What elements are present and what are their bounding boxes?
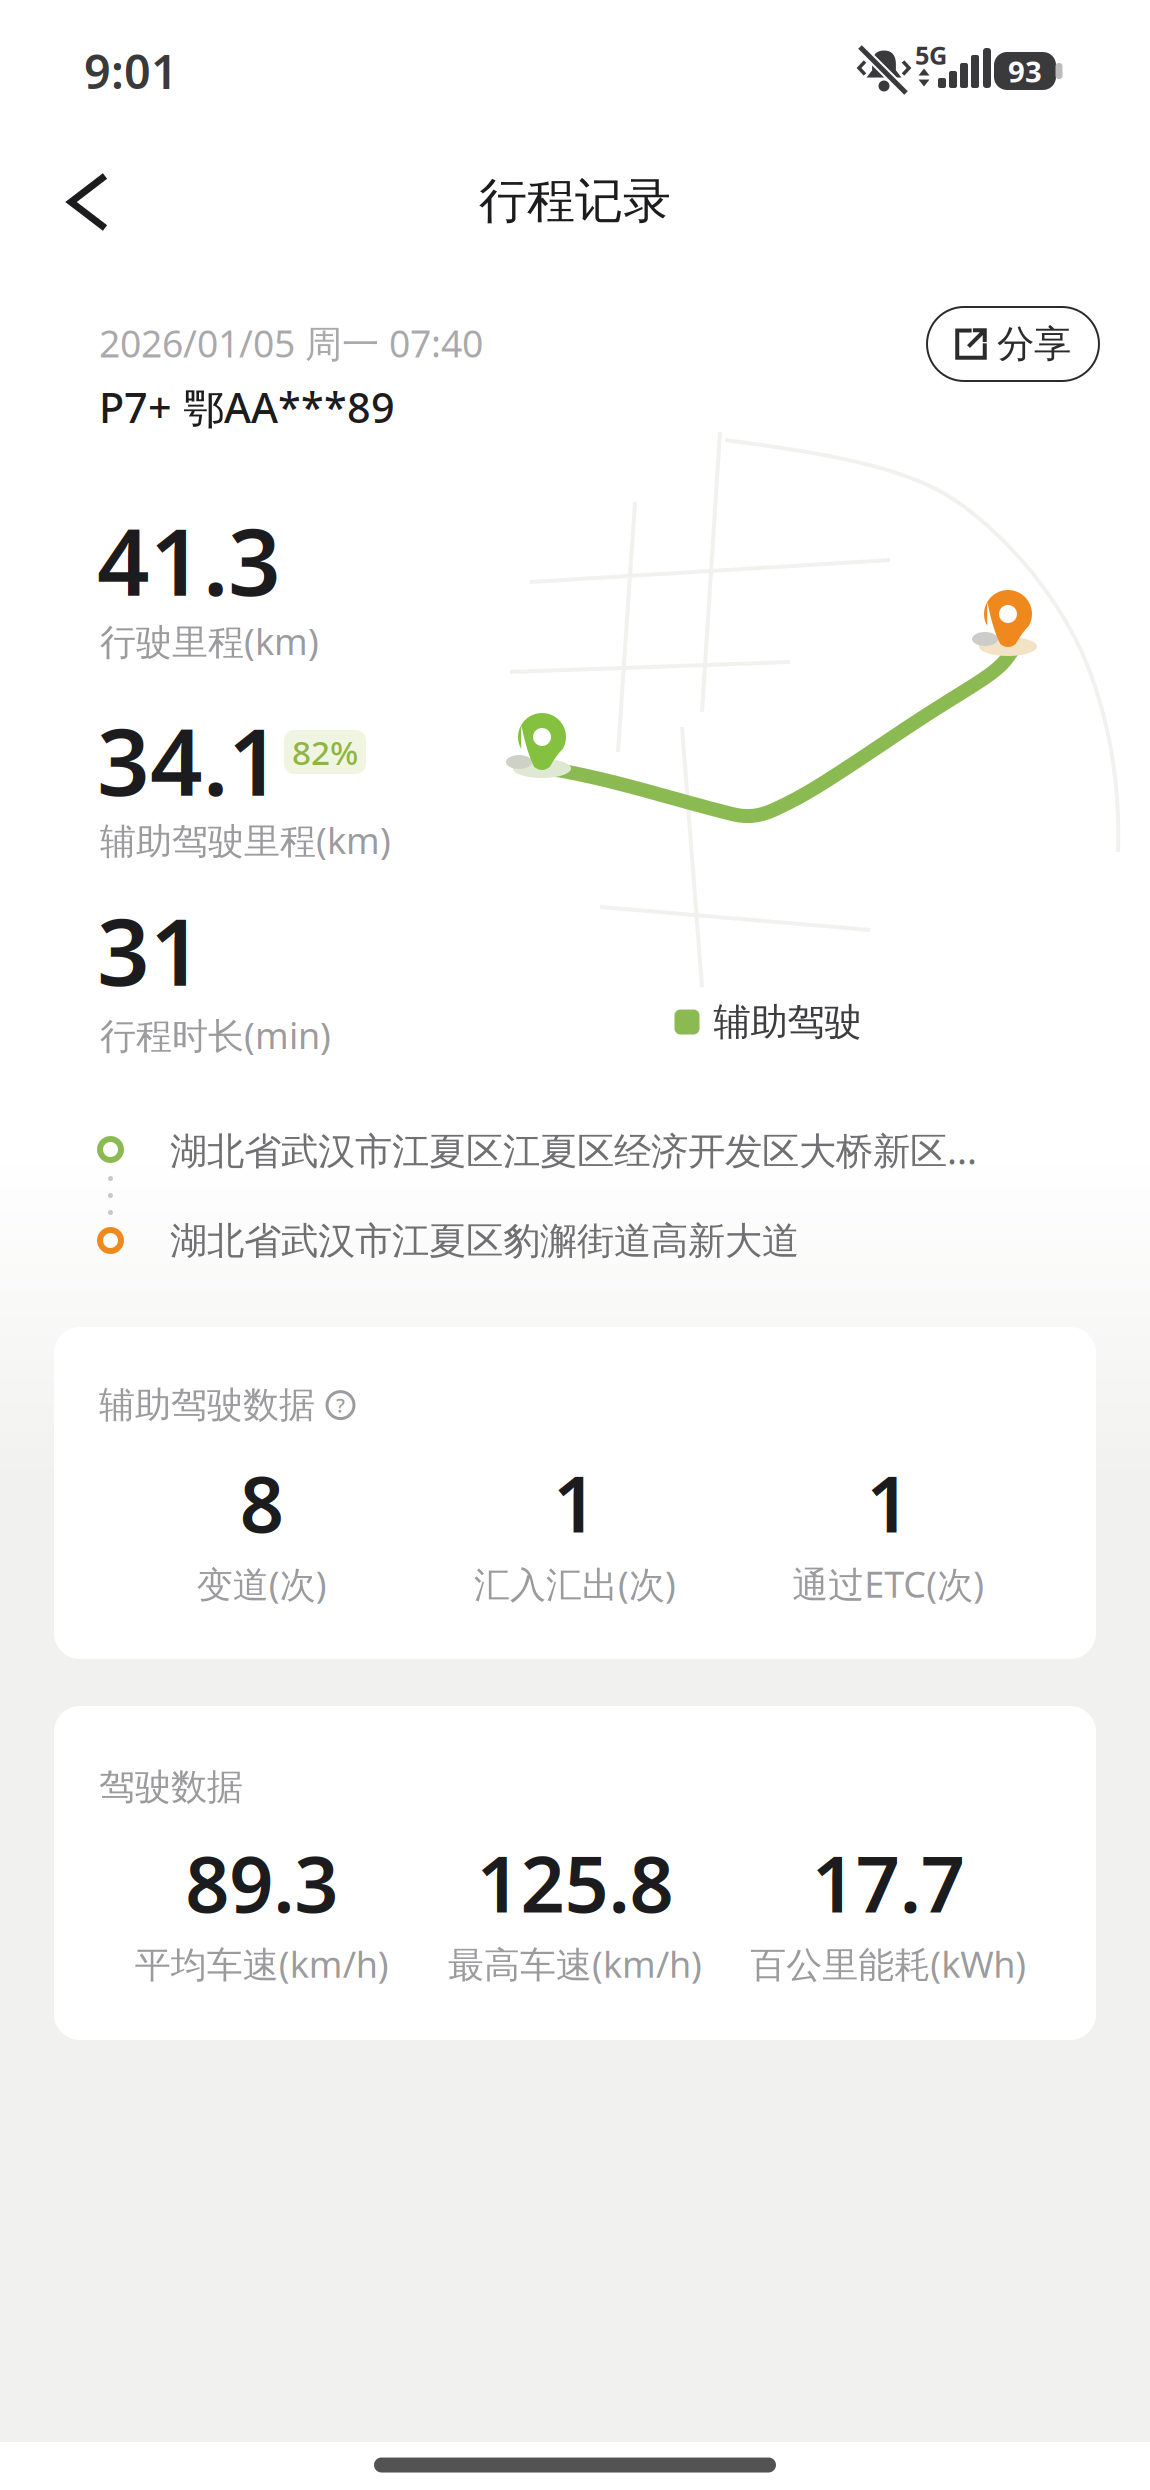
staticText: 93 [1008,51,1042,90]
staticText: 1 [553,1451,597,1554]
staticText: 34.1 [97,699,281,821]
staticText: 行程记录 [479,171,671,230]
staticText: 41.3 [97,499,281,621]
staticText: ? [336,1392,345,1418]
button[interactable]: 分享 [927,307,1099,381]
staticText: 变道(次) [197,1560,327,1608]
staticText: 汇入汇出(次) [474,1560,676,1608]
staticText: 行驶里程(km) [100,617,319,665]
staticText: 辅助驾驶里程(km) [100,816,391,864]
staticText: 31 [97,889,203,1011]
staticText: 分享 [997,321,1071,367]
staticText: 125.8 [476,1831,673,1934]
staticText: 8 [240,1451,284,1554]
staticText: 2026/01/05 周一 07:40 [99,318,483,368]
staticText: 1 [866,1451,910,1554]
staticText: 平均车速(km/h) [135,1940,389,1988]
staticText: 驾驶数据 [99,1765,243,1809]
staticText: 9:01 [84,40,178,102]
staticText: 湖北省武汉市江夏区豹澥街道高新大道 [170,1218,799,1264]
button[interactable]: 辅助驾驶数据说明 [327,1392,354,1419]
staticText: 湖北省武汉市江夏区江夏区经济开发区大桥新区... [170,1125,977,1175]
staticText: 通过ETC(次) [792,1560,984,1608]
staticText: 百公里能耗(kWh) [750,1940,1026,1988]
staticText: 辅助驾驶 [713,999,861,1045]
button[interactable]: 返回 [57,162,119,242]
staticText: 82% [292,730,358,774]
staticText: 行程时长(min) [100,1011,331,1059]
staticText: 5G [915,38,947,72]
staticText: 89.3 [185,1831,338,1934]
staticText: 最高车速(km/h) [448,1940,702,1988]
staticText: 17.7 [812,1831,965,1934]
staticText: P7+ 鄂AA***89 [99,379,395,434]
staticText: 辅助驾驶数据 [99,1383,315,1427]
